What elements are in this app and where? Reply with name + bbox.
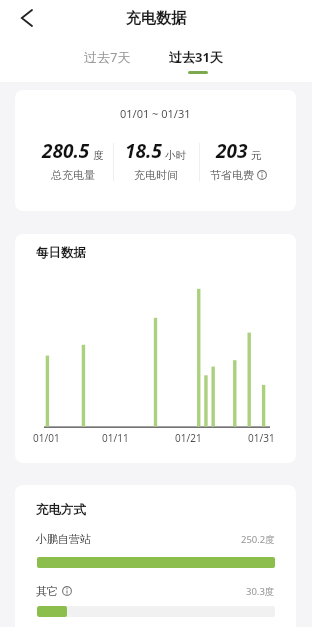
staticText: 过去31天: [169, 48, 223, 66]
staticText: 充电时间: [134, 168, 178, 182]
staticText: 01/31: [248, 431, 275, 445]
staticText: 其它: [36, 584, 58, 598]
staticText: 01/01: [33, 431, 60, 445]
staticText: 充电方式: [36, 502, 86, 518]
staticText: 280.5: [42, 138, 90, 164]
staticText: 01/01 ~ 01/31: [120, 106, 191, 121]
staticText: 节省电费: [210, 168, 254, 182]
staticText: 30.3度: [246, 585, 275, 598]
staticText: 01/11: [102, 431, 129, 445]
staticText: 度: [93, 149, 104, 162]
staticText: 总充电量: [51, 168, 95, 182]
button[interactable]: [10, 4, 42, 32]
staticText: 小时: [165, 149, 186, 162]
staticText: 每日数据: [36, 245, 86, 261]
button[interactable]: 过去31天: [162, 45, 230, 69]
staticText: 250.2度: [241, 533, 275, 546]
staticText: 01/21: [175, 431, 202, 445]
staticText: 元: [251, 149, 262, 162]
staticText: 小鹏自营站: [36, 532, 91, 546]
staticText: 18.5: [125, 138, 162, 164]
staticText: 203: [216, 138, 248, 164]
staticText: 过去7天: [84, 48, 131, 66]
staticText: 充电数据: [126, 9, 186, 28]
button[interactable]: 过去7天: [77, 45, 137, 69]
